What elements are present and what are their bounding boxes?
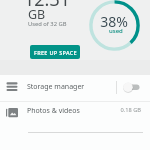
button[interactable]: FREE UP SPACE (30, 45, 80, 59)
staticText: Used of 32 GB (28, 20, 67, 28)
staticText: Storage manager (27, 82, 85, 92)
button[interactable] (120, 79, 146, 96)
staticText: 38% (100, 12, 128, 31)
staticText: 12.31 (24, 0, 71, 12)
button[interactable]: Photos & videos (0, 102, 150, 133)
staticText: FREE UP SPACE (34, 49, 77, 56)
staticText: 0.18 GB (120, 106, 141, 114)
button[interactable]: Storage manager (0, 75, 116, 101)
staticText: used (109, 27, 123, 35)
staticText: Photos & videos (27, 106, 80, 116)
staticText: GB (28, 6, 46, 23)
